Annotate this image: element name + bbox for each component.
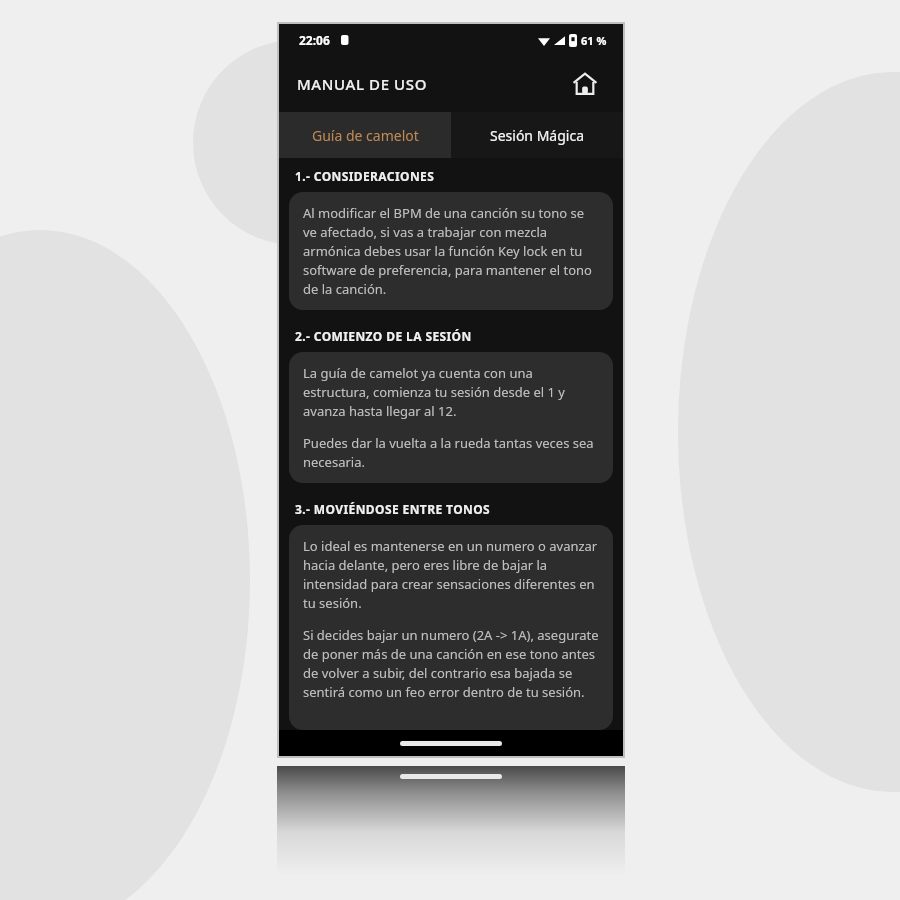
button[interactable]: Sesión Mágica xyxy=(451,112,623,158)
staticText: Si decides bajar un numero (2A -> 1A), a… xyxy=(303,626,599,701)
button[interactable]: Inicio xyxy=(565,64,605,104)
staticText: Sesión Mágica xyxy=(490,126,585,145)
staticText: 3.- MOVIÉNDOSE ENTRE TONOS xyxy=(295,501,491,517)
staticText: Guía de camelot xyxy=(312,126,419,145)
button[interactable]: Guía de camelot xyxy=(279,112,451,158)
staticText: 61 % xyxy=(581,33,607,48)
staticText: 2.- COMIENZO DE LA SESIÓN xyxy=(295,328,472,344)
staticText: Al modificar el BPM de una canción su to… xyxy=(303,204,599,298)
button[interactable]: Al modificar el BPM de una canción su to… xyxy=(289,192,613,310)
staticText: Lo ideal es mantenerse en un numero o av… xyxy=(303,537,599,612)
button[interactable]: La guía de camelot ya cuenta con una est… xyxy=(289,352,613,483)
staticText: 1.- CONSIDERACIONES xyxy=(295,168,435,184)
staticText: La guía de camelot ya cuenta con una est… xyxy=(303,364,599,420)
button[interactable]: Lo ideal es mantenerse en un numero o av… xyxy=(289,525,613,730)
staticText: Puedes dar la vuelta a la rueda tantas v… xyxy=(303,434,599,471)
staticText: 22:06 xyxy=(299,32,330,48)
staticText: MANUAL DE USO xyxy=(297,74,427,94)
